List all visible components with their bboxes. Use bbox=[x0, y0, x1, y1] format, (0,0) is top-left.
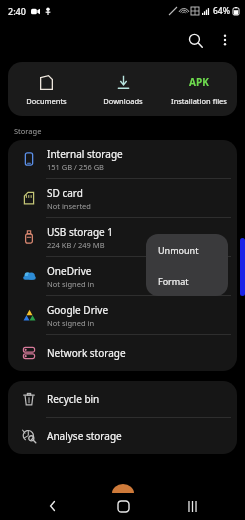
staticText: Storage bbox=[14, 126, 42, 136]
staticText: Format bbox=[158, 275, 189, 287]
staticText: Internal storage bbox=[47, 147, 123, 161]
staticText: OneDrive bbox=[47, 264, 92, 278]
staticText: Installation files bbox=[171, 96, 227, 106]
staticText: 64% bbox=[213, 5, 230, 17]
button[interactable]: SD card bbox=[8, 179, 237, 217]
staticText: Google Drive bbox=[47, 303, 109, 317]
button[interactable]: Analyse storage bbox=[8, 418, 237, 454]
staticText: SD card bbox=[47, 186, 83, 200]
staticText: 224 KB / 249 MB bbox=[47, 240, 105, 250]
button[interactable]: APK bbox=[161, 62, 237, 116]
staticText: Network storage bbox=[47, 346, 126, 360]
staticText: APK bbox=[189, 75, 209, 89]
staticText: Downloads bbox=[103, 96, 143, 106]
button[interactable]: Home bbox=[106, 492, 140, 520]
button[interactable]: Unmount bbox=[146, 234, 228, 265]
button[interactable]: Google Drive bbox=[8, 296, 237, 334]
button[interactable]: Recycle bin bbox=[8, 381, 237, 417]
button[interactable]: Internal storage bbox=[8, 140, 237, 178]
button[interactable]: Recents bbox=[175, 492, 209, 520]
button[interactable]: Back bbox=[36, 492, 70, 520]
staticText: Not signed in bbox=[47, 318, 95, 328]
staticText: 151 GB / 256 GB bbox=[47, 162, 104, 172]
staticText: Documents bbox=[26, 96, 67, 106]
staticText: Not inserted bbox=[47, 201, 91, 211]
button[interactable]: Format bbox=[146, 265, 228, 296]
button[interactable]: Downloads bbox=[85, 62, 161, 116]
button[interactable]: Search bbox=[179, 24, 211, 56]
button[interactable]: OneDrive bbox=[8, 257, 237, 295]
staticText: Unmount bbox=[158, 244, 199, 256]
staticText: Recycle bin bbox=[47, 392, 100, 406]
button[interactable]: More options bbox=[211, 26, 239, 54]
staticText: Not signed in bbox=[47, 279, 95, 289]
button[interactable]: USB storage 1 bbox=[8, 218, 237, 256]
button[interactable]: Documents bbox=[8, 62, 85, 116]
staticText: 2:40 bbox=[8, 5, 26, 17]
staticText: USB storage 1 bbox=[47, 225, 113, 239]
button[interactable]: Network storage bbox=[8, 335, 237, 371]
staticText: Analyse storage bbox=[47, 429, 122, 443]
